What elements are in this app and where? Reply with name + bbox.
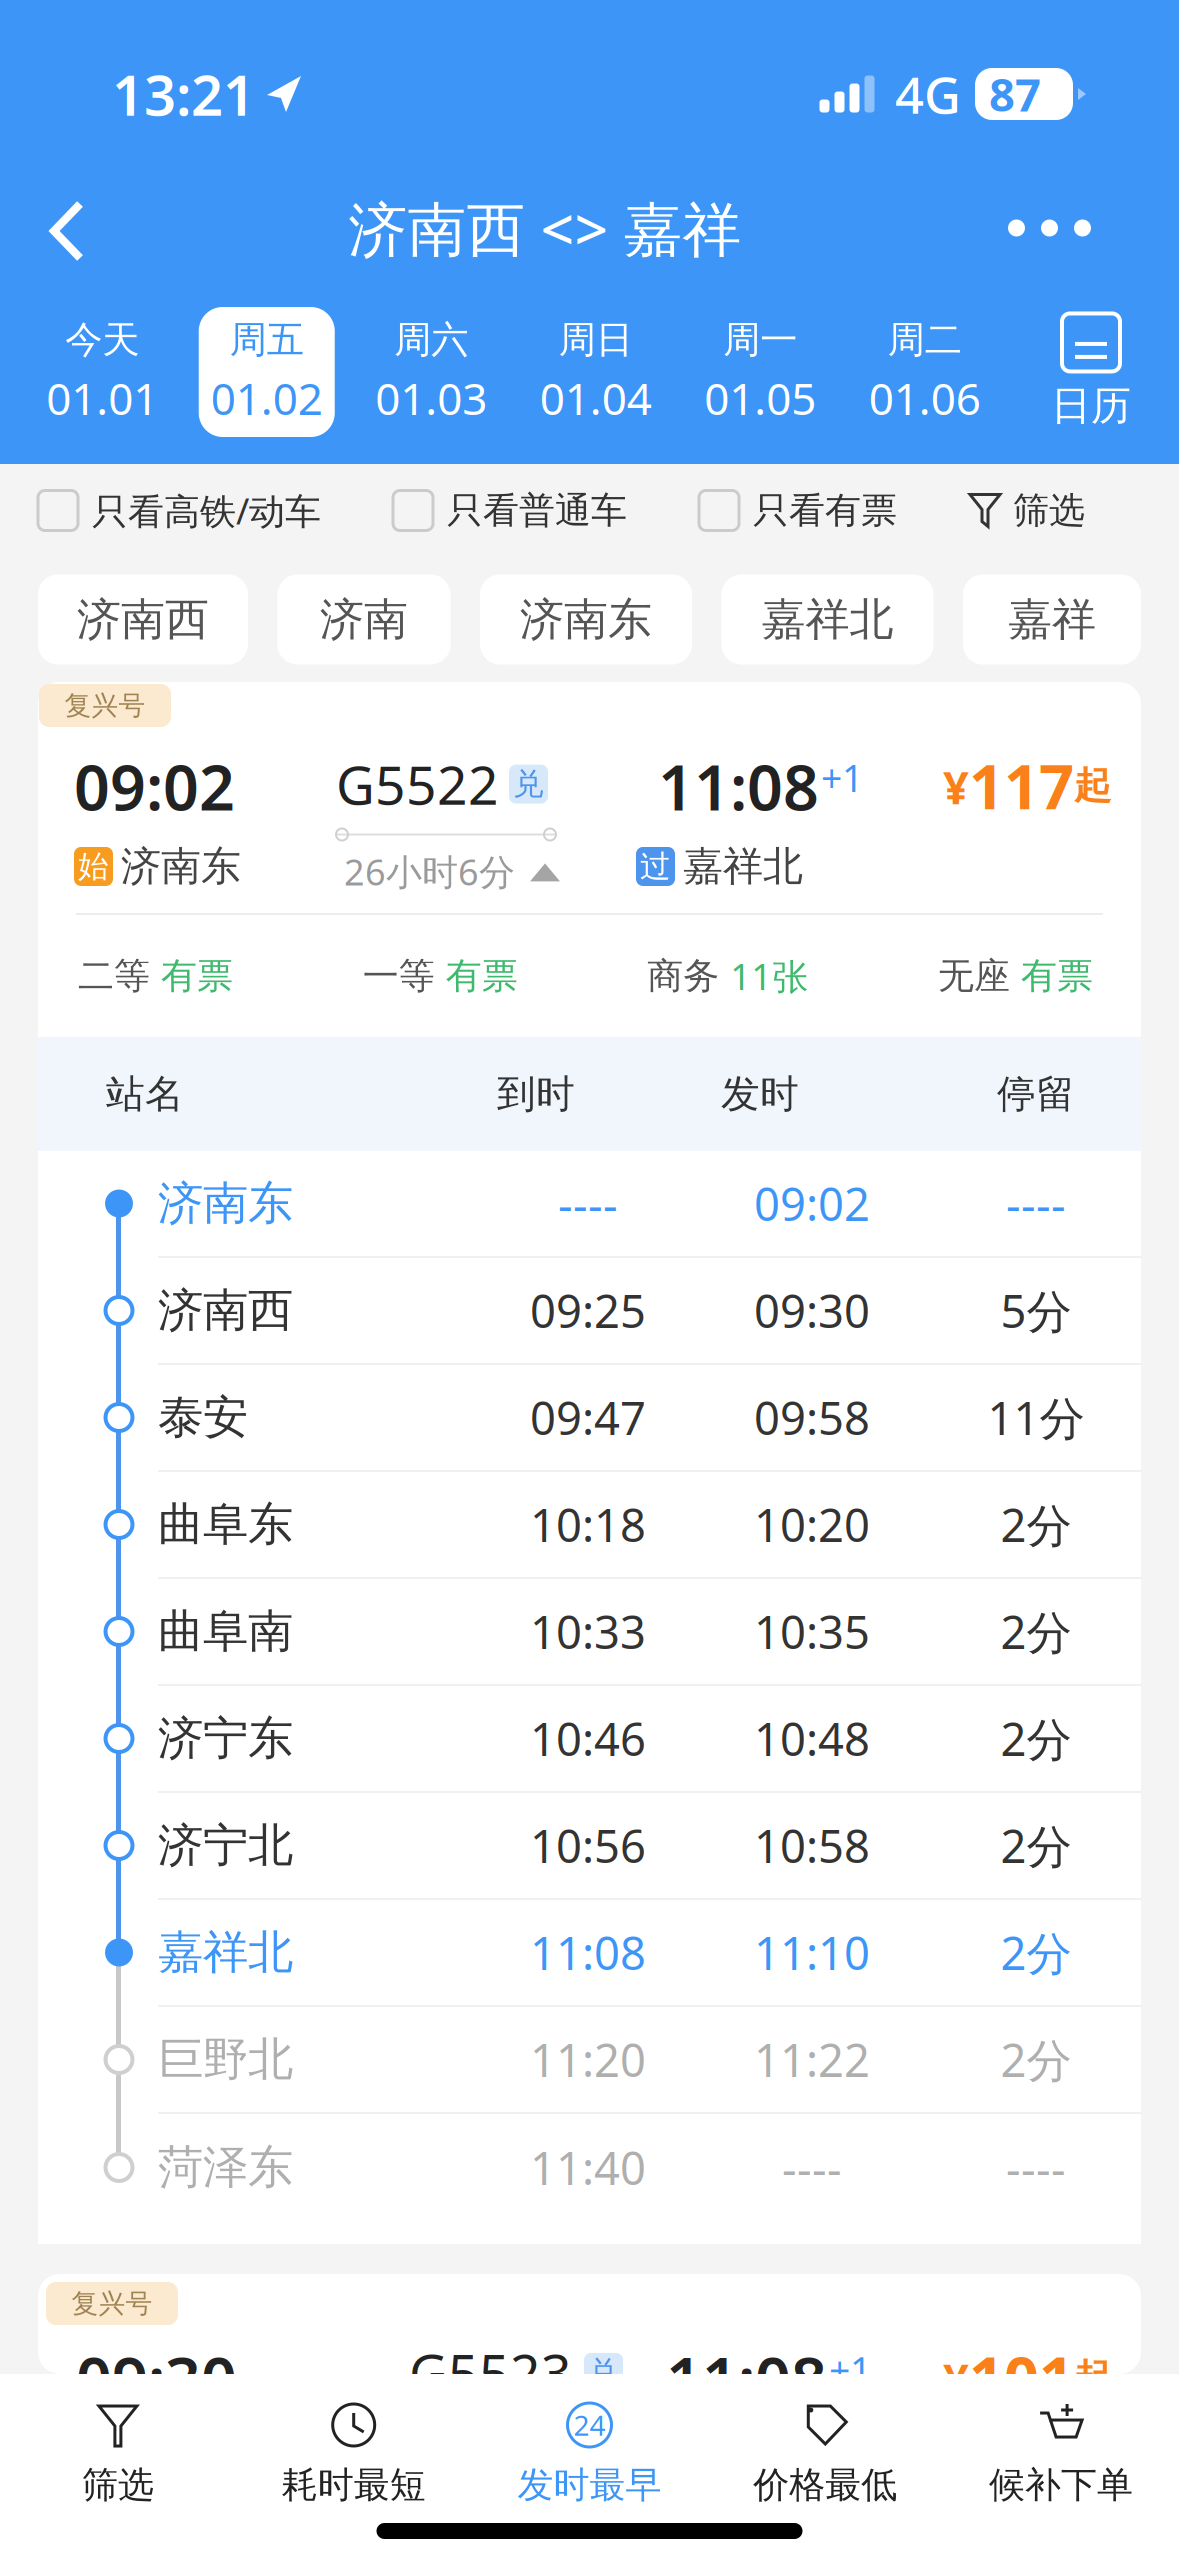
staticText: 11张 (730, 952, 808, 1000)
staticText: 只看普通车 (447, 488, 627, 533)
staticText: 过 (640, 848, 671, 885)
button[interactable]: 候补下单 (943, 2401, 1179, 2521)
staticText: 13:21 (112, 57, 255, 131)
staticText: 10:58 (754, 1815, 870, 1876)
staticText: 09:25 (530, 1280, 646, 1341)
button[interactable]: Calendar (1007, 298, 1175, 446)
staticText: 11:20 (530, 2029, 646, 2090)
staticText: 价格最低 (753, 2463, 897, 2507)
staticText: 2分 (1000, 1815, 1071, 1876)
button[interactable]: 周一 (678, 307, 842, 437)
staticText: 10:33 (530, 1601, 646, 1662)
staticText: 二等 (78, 954, 150, 998)
staticText: 巨野北 (158, 2032, 293, 2087)
staticText: 10:46 (530, 1708, 646, 1769)
staticText: 济南东 (158, 1176, 293, 1231)
button[interactable]: 筛选 (969, 488, 1085, 533)
button[interactable]: 嘉祥北 (721, 574, 933, 664)
staticText: 济宁东 (158, 1711, 293, 1766)
staticText: 101 (969, 2337, 1074, 2418)
staticText: 11分 (987, 1387, 1084, 1448)
button[interactable]: 只看高铁/动车 (38, 487, 321, 534)
staticText: G5522 (336, 749, 499, 819)
button[interactable]: 济南东 (480, 574, 692, 664)
staticText: 11:10 (754, 1922, 870, 1983)
staticText: 筛选 (82, 2463, 154, 2507)
staticText: ---- (782, 2137, 842, 2198)
button[interactable]: 周二 (842, 307, 1007, 437)
staticText: 87 (989, 64, 1041, 124)
staticText: 筛选 (1013, 488, 1085, 533)
staticText: 有票 (1021, 954, 1093, 998)
staticText: 01.01 (46, 369, 158, 427)
button[interactable]: 只看有票 (699, 488, 897, 533)
staticText: 泰安 (158, 1390, 248, 1445)
staticText: +1 (829, 2345, 871, 2395)
staticText: 09:47 (530, 1387, 646, 1448)
staticText: 济宁北 (158, 1818, 293, 1873)
staticText: 济南 (320, 592, 408, 646)
staticText: 01.04 (540, 369, 652, 427)
staticText: 嘉祥北 (761, 592, 893, 646)
staticText: 兑 (588, 2354, 619, 2391)
staticText: 兑 (513, 765, 544, 803)
staticText: 周日 (559, 317, 633, 363)
button[interactable]: 周六 (349, 307, 513, 437)
staticText: 09:30 (76, 2337, 237, 2420)
staticText: 周二 (888, 317, 962, 363)
staticText: 起 (1074, 2355, 1111, 2401)
staticText: 10:20 (754, 1494, 870, 1555)
staticText: 26小时6分 (344, 847, 515, 895)
staticText: 4G (895, 60, 961, 128)
staticText: 09:02 (74, 745, 235, 828)
staticText: +1 (821, 753, 863, 802)
button[interactable]: 价格最低 (707, 2401, 943, 2521)
staticText: 11:08 (666, 2337, 827, 2420)
staticText: 耗时最短 (282, 2463, 426, 2507)
button[interactable]: 济南 (277, 574, 450, 664)
staticText: ¥ (943, 757, 969, 817)
staticText: 起 (1074, 763, 1111, 809)
staticText: 发时 (721, 1070, 799, 1118)
staticText: 嘉祥北 (683, 842, 803, 891)
staticText: 11:22 (754, 2029, 870, 2090)
button[interactable]: 耗时最短 (236, 2401, 472, 2521)
button[interactable]: 济南西 (38, 574, 248, 664)
staticText: G5523 (409, 2337, 572, 2408)
staticText: 候补下单 (989, 2463, 1133, 2507)
button[interactable]: 24 (472, 2401, 707, 2521)
staticText: 济南西 <> 嘉祥 (348, 189, 741, 267)
staticText: 只看有票 (753, 488, 897, 533)
staticText: 一等 (363, 954, 435, 998)
staticText: 曲阜南 (158, 1604, 293, 1659)
button[interactable]: 今天 (20, 307, 184, 437)
staticText: 复兴号 (64, 689, 145, 722)
staticText: 01.03 (375, 369, 487, 427)
staticText: 10:35 (754, 1601, 870, 1662)
staticText: 10:18 (530, 1494, 646, 1555)
staticText: ---- (1006, 1173, 1066, 1234)
staticText: 济南西 (77, 592, 209, 646)
staticText: ---- (1006, 2137, 1066, 2198)
staticText: 5分 (1000, 1280, 1071, 1341)
button[interactable]: Back (10, 163, 126, 293)
staticText: 曲阜东 (158, 1497, 293, 1552)
button[interactable]: 周日 (513, 307, 678, 437)
button[interactable]: 筛选 (0, 2401, 236, 2521)
staticText: 发时最早 (517, 2463, 661, 2507)
staticText: 济南东 (121, 842, 241, 891)
staticText: 2分 (1000, 1708, 1071, 1769)
button[interactable]: 周五 (184, 307, 349, 437)
staticText: 11:08 (530, 1922, 646, 1983)
staticText: 只看高铁/动车 (92, 487, 321, 534)
staticText: 始 (78, 848, 109, 885)
staticText: 嘉祥 (1008, 592, 1096, 646)
staticText: 站名 (106, 1070, 184, 1118)
button[interactable]: 只看普通车 (393, 488, 627, 533)
button[interactable]: More (964, 163, 1169, 293)
staticText: 有票 (446, 954, 518, 998)
staticText: 10:56 (530, 1815, 646, 1876)
staticText: 今天 (65, 317, 139, 363)
button[interactable]: 嘉祥 (963, 574, 1141, 664)
staticText: 01.02 (211, 369, 323, 427)
